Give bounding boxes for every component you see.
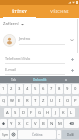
- staticText: T: [34, 98, 37, 104]
- button[interactable]: 3: [16, 84, 23, 94]
- staticText: I: [59, 98, 61, 104]
- button[interactable]: N: [48, 119, 55, 128]
- button[interactable]: L: [68, 108, 75, 117]
- button[interactable]: M: [56, 119, 63, 128]
- button[interactable]: G: [36, 108, 43, 117]
- staticText: M: [58, 121, 62, 127]
- button[interactable]: F: [28, 108, 35, 117]
- staticText: 2: [10, 86, 13, 92]
- staticText: Jméno: [19, 36, 31, 41]
- staticText: A: [6, 110, 9, 116]
- button[interactable]: 2: [8, 84, 15, 94]
- staticText: E: [18, 98, 21, 104]
- staticText: 7: [50, 86, 53, 92]
- staticText: 9: [66, 86, 69, 92]
- staticText: V: [34, 121, 37, 127]
- staticText: R: [26, 98, 29, 104]
- staticText: E-mail: [5, 67, 16, 72]
- button[interactable]: Z: [40, 96, 47, 106]
- button[interactable]: 6: [40, 84, 47, 94]
- button[interactable]: 5: [32, 84, 39, 94]
- button[interactable]: 9: [64, 84, 71, 94]
- button[interactable]: I: [56, 96, 63, 106]
- staticText: 1: [2, 86, 5, 92]
- button[interactable]: Telefonní číslo: [0, 54, 79, 65]
- staticText: ŠTÍTKY: [12, 9, 27, 15]
- button[interactable]: U: [48, 96, 55, 106]
- button[interactable]: ŠTÍTKY: [0, 5, 39, 18]
- button[interactable]: VŠICHNI: [39, 5, 79, 18]
- button[interactable]: R: [24, 96, 31, 106]
- staticText: a: [65, 78, 67, 82]
- staticText: N: [50, 121, 54, 127]
- button[interactable]: K: [60, 108, 67, 117]
- button[interactable]: W: [8, 96, 15, 106]
- staticText: K: [62, 110, 65, 116]
- staticText: 3: [18, 86, 21, 92]
- button[interactable]: Přidat E-mail: [65, 65, 79, 76]
- staticText: S: [14, 110, 17, 116]
- button[interactable]: 4: [24, 84, 31, 94]
- button[interactable]: 0: [72, 84, 79, 94]
- button[interactable]: B: [40, 119, 47, 128]
- staticText: Dokončit: [33, 78, 47, 82]
- button[interactable]: 7: [48, 84, 55, 94]
- button[interactable]: D: [20, 108, 27, 117]
- staticText: G: [38, 110, 42, 116]
- button[interactable]: H: [44, 108, 51, 117]
- staticText: Q: [2, 98, 6, 104]
- button[interactable]: Rozbalit jméno: [65, 30, 79, 50]
- button[interactable]: O: [64, 96, 71, 106]
- button[interactable]: Přidat Telefonní číslo: [65, 54, 79, 65]
- staticText: 8: [58, 86, 61, 92]
- staticText: 4: [26, 86, 29, 92]
- button[interactable]: Sym: [0, 130, 9, 139]
- button[interactable]: X: [16, 119, 23, 128]
- button[interactable]: T: [32, 96, 39, 106]
- staticText: H: [46, 110, 50, 116]
- staticText: Sym: [2, 133, 8, 137]
- button[interactable]: Další: [62, 130, 79, 139]
- staticText: J: [55, 110, 57, 116]
- button[interactable]: Tečka: [57, 130, 61, 139]
- staticText: 0: [74, 86, 77, 92]
- button[interactable]: Nastavení: [10, 130, 17, 139]
- button[interactable]: C: [24, 119, 31, 128]
- staticText: B: [42, 121, 45, 127]
- staticText: W: [10, 98, 14, 104]
- button[interactable]: J: [52, 108, 59, 117]
- staticText: Čeština: [32, 133, 43, 137]
- button[interactable]: Čeština: [18, 130, 56, 139]
- button[interactable]: Shift: [0, 119, 7, 128]
- button[interactable]: E: [16, 96, 23, 106]
- staticText: C: [26, 121, 29, 127]
- staticText: O: [66, 98, 70, 104]
- button[interactable]: Smazat: [64, 119, 79, 128]
- button[interactable]: Tab: [0, 76, 27, 83]
- button[interactable]: E-mail: [0, 65, 79, 76]
- button[interactable]: V: [32, 119, 39, 128]
- staticText: Zařízení: [3, 21, 19, 27]
- staticText: Další: [67, 133, 74, 137]
- button[interactable]: A: [4, 108, 11, 117]
- button[interactable]: Q: [0, 96, 7, 106]
- button[interactable]: P: [72, 96, 79, 106]
- staticText: F: [30, 110, 33, 116]
- staticText: VŠICHNI: [50, 9, 69, 15]
- staticText: U: [50, 98, 54, 104]
- button[interactable]: Zařízení: [0, 18, 79, 30]
- staticText: D: [22, 110, 26, 116]
- staticText: 5: [34, 86, 37, 92]
- staticText: P: [74, 98, 77, 104]
- button[interactable]: 8: [56, 84, 63, 94]
- button[interactable]: Y: [8, 119, 15, 128]
- button[interactable]: Dokončit: [27, 76, 53, 83]
- button[interactable]: S: [12, 108, 19, 117]
- button[interactable]: 1: [0, 84, 7, 94]
- staticText: 6: [42, 86, 45, 92]
- staticText: Z: [42, 98, 45, 104]
- staticText: X: [18, 121, 21, 127]
- staticText: Tab: [11, 78, 17, 82]
- button[interactable]: Přidat fotku: [3, 34, 16, 47]
- button[interactable]: a: [53, 76, 79, 83]
